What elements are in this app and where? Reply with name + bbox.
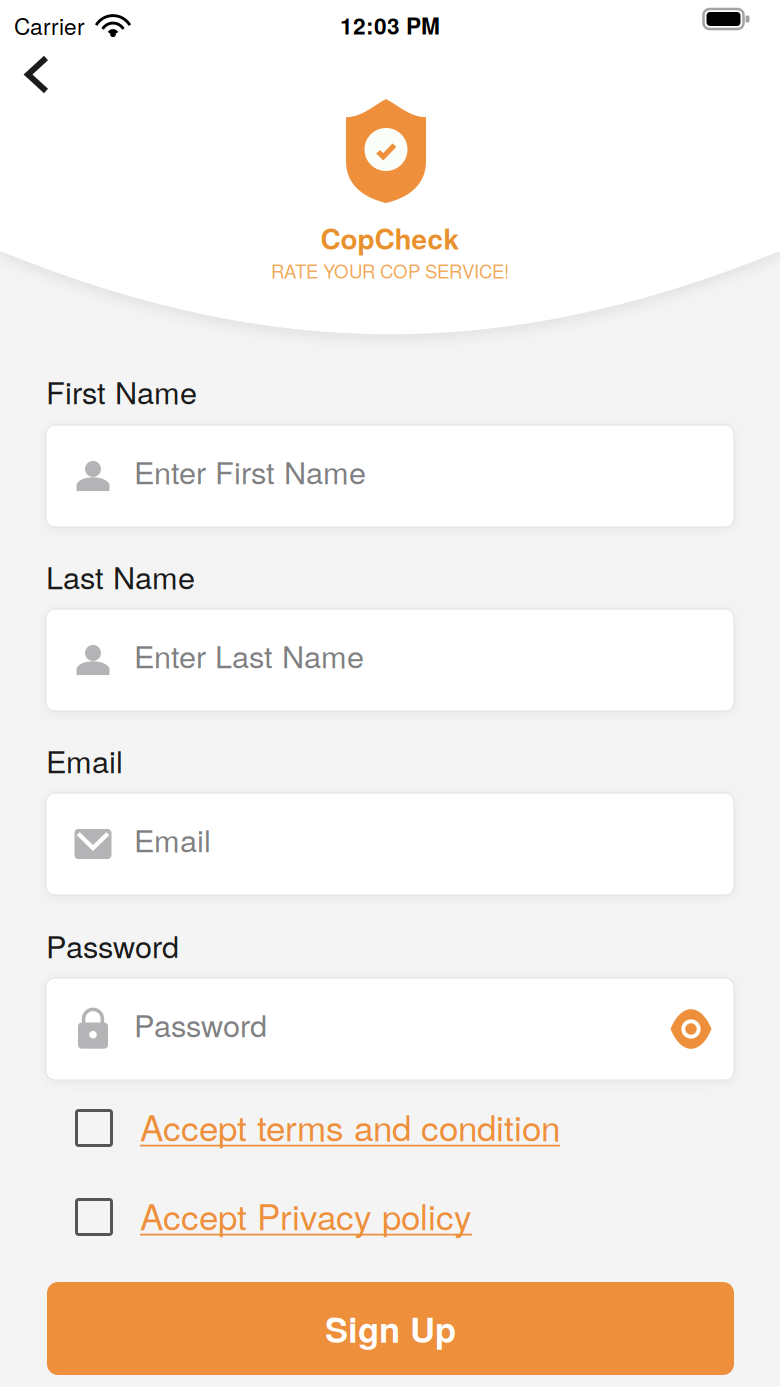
staticText: First Name — [46, 369, 197, 413]
staticText: Carrier — [14, 9, 85, 41]
button[interactable]: Accept Privacy policy — [46, 1191, 734, 1243]
button[interactable]: Show password — [659, 997, 723, 1061]
staticText: Password — [46, 923, 179, 967]
button[interactable]: Sign Up — [47, 1282, 734, 1375]
button[interactable]: Back — [10, 44, 64, 105]
staticText: Last Name — [46, 554, 195, 598]
button[interactable]: Accept terms and condition — [46, 1102, 734, 1154]
staticText: Email — [46, 738, 123, 782]
staticText: 12:03 PM — [340, 9, 440, 41]
staticText: Enter First Name — [134, 449, 366, 493]
staticText: CopCheck — [320, 218, 459, 258]
staticText: Enter Last Name — [134, 633, 364, 677]
staticText: Email — [134, 817, 211, 861]
staticText: Sign Up — [325, 1304, 456, 1353]
staticText: Accept Privacy policy — [140, 1190, 472, 1240]
staticText: Password — [134, 1002, 267, 1046]
staticText: RATE YOUR COP SERVICE! — [271, 257, 509, 284]
staticText: Accept terms and condition — [140, 1101, 560, 1151]
